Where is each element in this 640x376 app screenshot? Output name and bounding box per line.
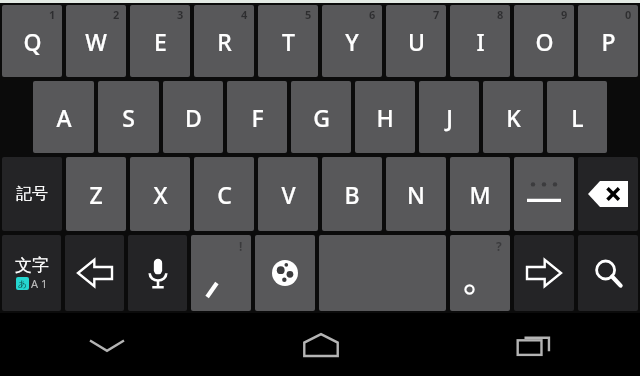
button[interactable]: D [163, 81, 223, 153]
button[interactable]: S [98, 81, 159, 153]
button[interactable]: G [291, 81, 351, 153]
button[interactable]: L [547, 81, 607, 153]
staticText: K [506, 102, 521, 133]
staticText: 0 [625, 7, 632, 22]
button[interactable]: A [33, 81, 94, 153]
staticText: ? [496, 238, 502, 254]
button[interactable]: Search [578, 235, 638, 311]
button[interactable]: Y [322, 5, 382, 77]
staticText: Y [345, 26, 359, 57]
button[interactable]: R [194, 5, 254, 77]
staticText: A [56, 102, 72, 133]
button[interactable]: B [322, 157, 382, 231]
staticText: あ [18, 278, 28, 289]
button[interactable]: E [130, 5, 190, 77]
button[interactable]: Voice input [128, 235, 187, 311]
staticText: R [217, 26, 232, 57]
button[interactable]: Left [65, 235, 124, 311]
button[interactable]: 記号 [2, 157, 62, 231]
button[interactable]: F [227, 81, 287, 153]
staticText: B [344, 179, 360, 210]
button[interactable]: X [130, 157, 190, 231]
staticText: 7 [433, 7, 440, 22]
staticText: C [217, 179, 232, 210]
button[interactable] [514, 157, 574, 231]
staticText: F [251, 102, 264, 133]
button[interactable]: ! [191, 235, 251, 311]
staticText: 2 [113, 7, 120, 22]
staticText: U [408, 26, 425, 57]
button[interactable]: K [483, 81, 543, 153]
button[interactable]: ? [450, 235, 510, 311]
staticText: ! [239, 238, 243, 254]
staticText: Q [23, 26, 42, 57]
staticText: N [407, 179, 425, 210]
staticText: D [185, 102, 202, 133]
staticText: V [281, 179, 296, 210]
staticText: 1 [49, 7, 56, 22]
staticText: 4 [241, 7, 248, 22]
button[interactable]: P [578, 5, 638, 77]
staticText: 8 [497, 7, 504, 22]
staticText: I [476, 26, 485, 57]
staticText: 文字 [15, 255, 49, 276]
button[interactable]: I [450, 5, 510, 77]
button[interactable]: Z [66, 157, 126, 231]
staticText: Z [89, 179, 103, 210]
button[interactable]: Hide keyboard [0, 313, 214, 376]
staticText: E [154, 26, 167, 57]
staticText: 記号 [16, 184, 48, 204]
staticText: 9 [561, 7, 568, 22]
button[interactable]: 文字 [2, 235, 61, 311]
staticText: 3 [177, 7, 184, 22]
button[interactable]: H [355, 81, 415, 153]
staticText: H [376, 102, 394, 133]
button[interactable]: W [66, 5, 126, 77]
staticText: X [153, 179, 168, 210]
button[interactable]: Q [2, 5, 62, 77]
staticText: 5 [305, 7, 312, 22]
button[interactable]: N [386, 157, 446, 231]
button[interactable]: V [258, 157, 318, 231]
button[interactable]: C [194, 157, 254, 231]
staticText: 6 [369, 7, 376, 22]
button[interactable]: Home [214, 313, 427, 376]
button[interactable]: Recents [427, 313, 640, 376]
button[interactable]: O [514, 5, 574, 77]
button[interactable]: J [419, 81, 479, 153]
button[interactable]: Change keyboard [255, 235, 315, 311]
staticText: L [571, 102, 584, 133]
staticText: P [601, 26, 616, 57]
staticText: S [122, 102, 135, 133]
staticText: A 1 [31, 276, 48, 291]
button[interactable]: M [450, 157, 510, 231]
staticText: O [535, 26, 554, 57]
button[interactable]: Right [514, 235, 574, 311]
staticText: M [469, 179, 491, 210]
staticText: W [85, 26, 107, 57]
staticText: T [282, 26, 295, 57]
button[interactable]: Backspace [578, 157, 638, 231]
button[interactable]: T [258, 5, 318, 77]
staticText: G [313, 102, 330, 133]
button[interactable]: U [386, 5, 446, 77]
staticText: J [446, 102, 453, 133]
